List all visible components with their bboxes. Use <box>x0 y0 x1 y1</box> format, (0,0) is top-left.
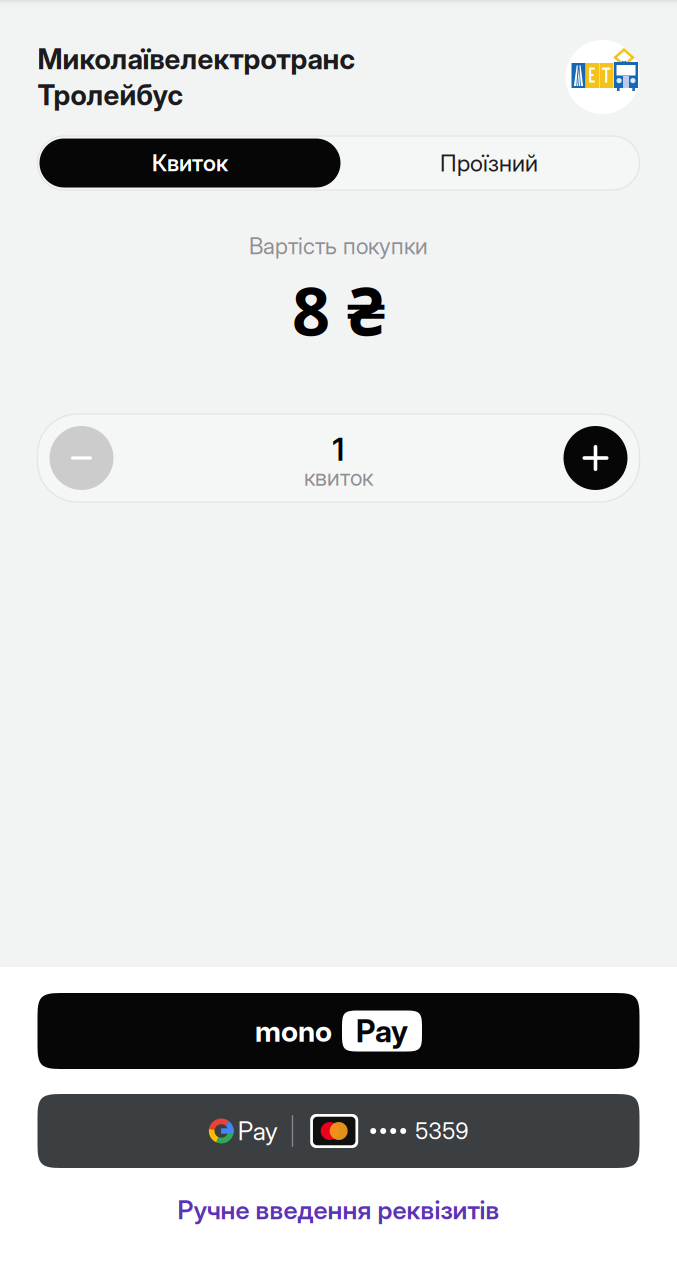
staticText: Миколаївелектротранс <box>37 42 355 76</box>
staticText: 8 ₴ <box>292 265 385 355</box>
staticText: Проїзний <box>440 149 538 177</box>
button[interactable]: mono <box>37 993 639 1069</box>
staticText: 5359 <box>415 1117 468 1145</box>
button[interactable]: Ручне введення реквізитів <box>37 1184 639 1236</box>
button[interactable]: Зменшити кількість <box>49 426 113 490</box>
button[interactable]: Pay <box>37 1094 639 1168</box>
staticText: Квиток <box>152 149 228 177</box>
staticText: 1 <box>332 431 344 468</box>
staticText: Вартість покупки <box>249 232 428 260</box>
button[interactable]: Квиток <box>39 138 340 187</box>
button[interactable]: Проїзний <box>340 138 637 187</box>
staticText: Pay <box>238 1116 278 1146</box>
staticText: Тролейбус <box>37 78 183 112</box>
button[interactable]: Збільшити кількість <box>563 426 627 490</box>
staticText: квиток <box>304 464 373 491</box>
staticText: Ручне введення реквізитів <box>177 1195 499 1225</box>
staticText: mono <box>255 1013 332 1049</box>
staticText: Pay <box>356 1012 408 1049</box>
